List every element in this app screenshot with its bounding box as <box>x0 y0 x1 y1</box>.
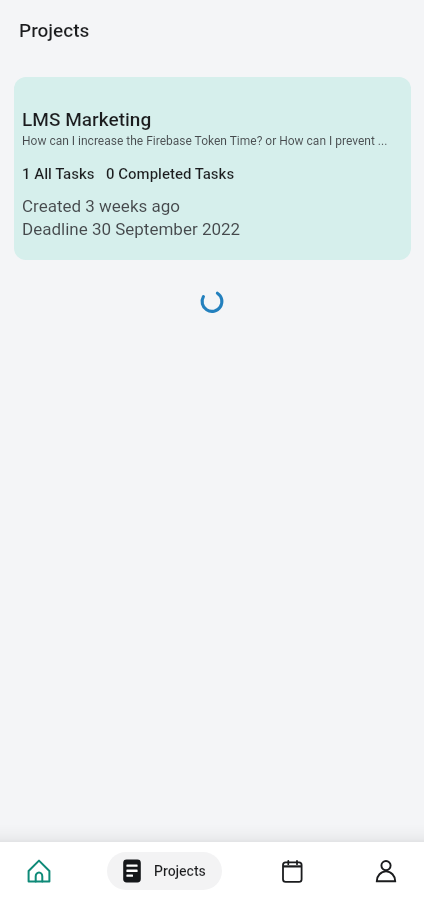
staticText: LMS Marketing <box>22 108 152 130</box>
staticText: Projects <box>154 863 206 879</box>
staticText: How can I increase the Firebase Token Ti… <box>22 134 407 148</box>
staticText: Created 3 weeks ago <box>22 196 180 216</box>
button[interactable]: Home <box>15 847 63 895</box>
button[interactable]: Calendar <box>268 847 316 895</box>
staticText: Deadline 30 September 2022 <box>22 219 241 239</box>
staticText: 1 All Tasks <box>22 165 95 183</box>
button[interactable]: LMS Marketing <box>14 77 411 260</box>
button[interactable]: Projects <box>107 852 222 890</box>
button[interactable]: Profile <box>362 847 410 895</box>
staticText: Projects <box>19 19 90 41</box>
staticText: 0 Completed Tasks <box>106 165 235 183</box>
